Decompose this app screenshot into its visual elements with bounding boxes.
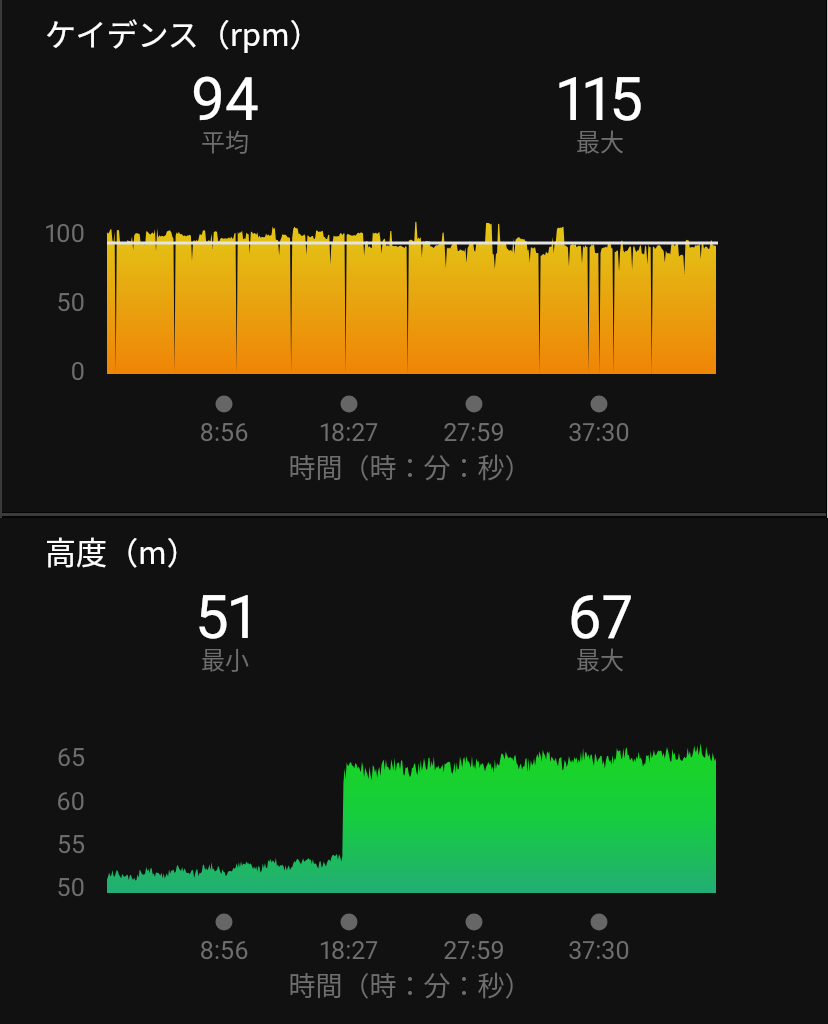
staticText: 50 (0, 288, 85, 800)
staticText: 8:56 (124, 418, 324, 930)
staticText: 18:27 (249, 418, 449, 930)
staticText: 94 (65, 64, 385, 576)
staticText: 100 (0, 219, 85, 731)
staticText: 0 (0, 357, 85, 869)
staticText: 最大 (500, 123, 700, 635)
staticText: 27:59 (374, 936, 574, 1024)
staticText: 65 (0, 743, 85, 1024)
staticText: 時間（時：分：秒） (150, 965, 670, 1024)
staticText: 115 (440, 64, 760, 576)
staticText: 最大 (500, 641, 700, 1024)
staticText: 最小 (125, 641, 325, 1024)
staticText: 55 (0, 830, 85, 1024)
button[interactable]: ケイデンス（rpm） (0, 0, 828, 512)
staticText: 37:30 (499, 418, 699, 930)
staticText: 60 (0, 787, 85, 1024)
staticText: 18:27 (249, 936, 449, 1024)
staticText: 37:30 (499, 936, 699, 1024)
staticText: 51 (65, 582, 385, 1024)
staticText: 50 (0, 873, 85, 1024)
staticText: 27:59 (374, 418, 574, 930)
button[interactable]: 高度（m） (0, 518, 828, 1024)
staticText: 時間（時：分：秒） (150, 447, 670, 959)
staticText: 8:56 (124, 936, 324, 1024)
staticText: 高度（m） (45, 528, 198, 573)
staticText: 平均 (125, 123, 325, 635)
staticText: 67 (440, 582, 760, 1024)
staticText: ケイデンス（rpm） (45, 10, 321, 55)
